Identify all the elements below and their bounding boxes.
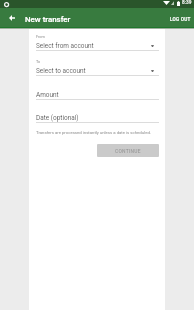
staticText: LOG OUT — [170, 17, 191, 23]
button[interactable]: CONTINUE — [97, 144, 159, 157]
button[interactable]: From — [36, 29, 159, 51]
staticText: Amount — [36, 91, 59, 99]
staticText: To — [36, 59, 41, 63]
staticText: 8:39 — [182, 0, 192, 6]
button[interactable]: To — [36, 51, 159, 76]
staticText: From — [36, 34, 45, 38]
button[interactable]: Date (optional) — [36, 100, 159, 123]
staticText: Date (optional) — [36, 114, 79, 122]
staticText: Select from account — [36, 42, 94, 50]
staticText: Select to account — [36, 67, 86, 75]
button[interactable]: LOG OUT — [164, 12, 194, 26]
staticText: New transfer — [25, 15, 71, 24]
staticText: CONTINUE — [115, 148, 141, 154]
button[interactable]: Amount — [36, 76, 159, 100]
staticText: Transfers are processed instantly unless… — [36, 130, 151, 135]
button[interactable]: Navigate up — [4, 10, 19, 25]
